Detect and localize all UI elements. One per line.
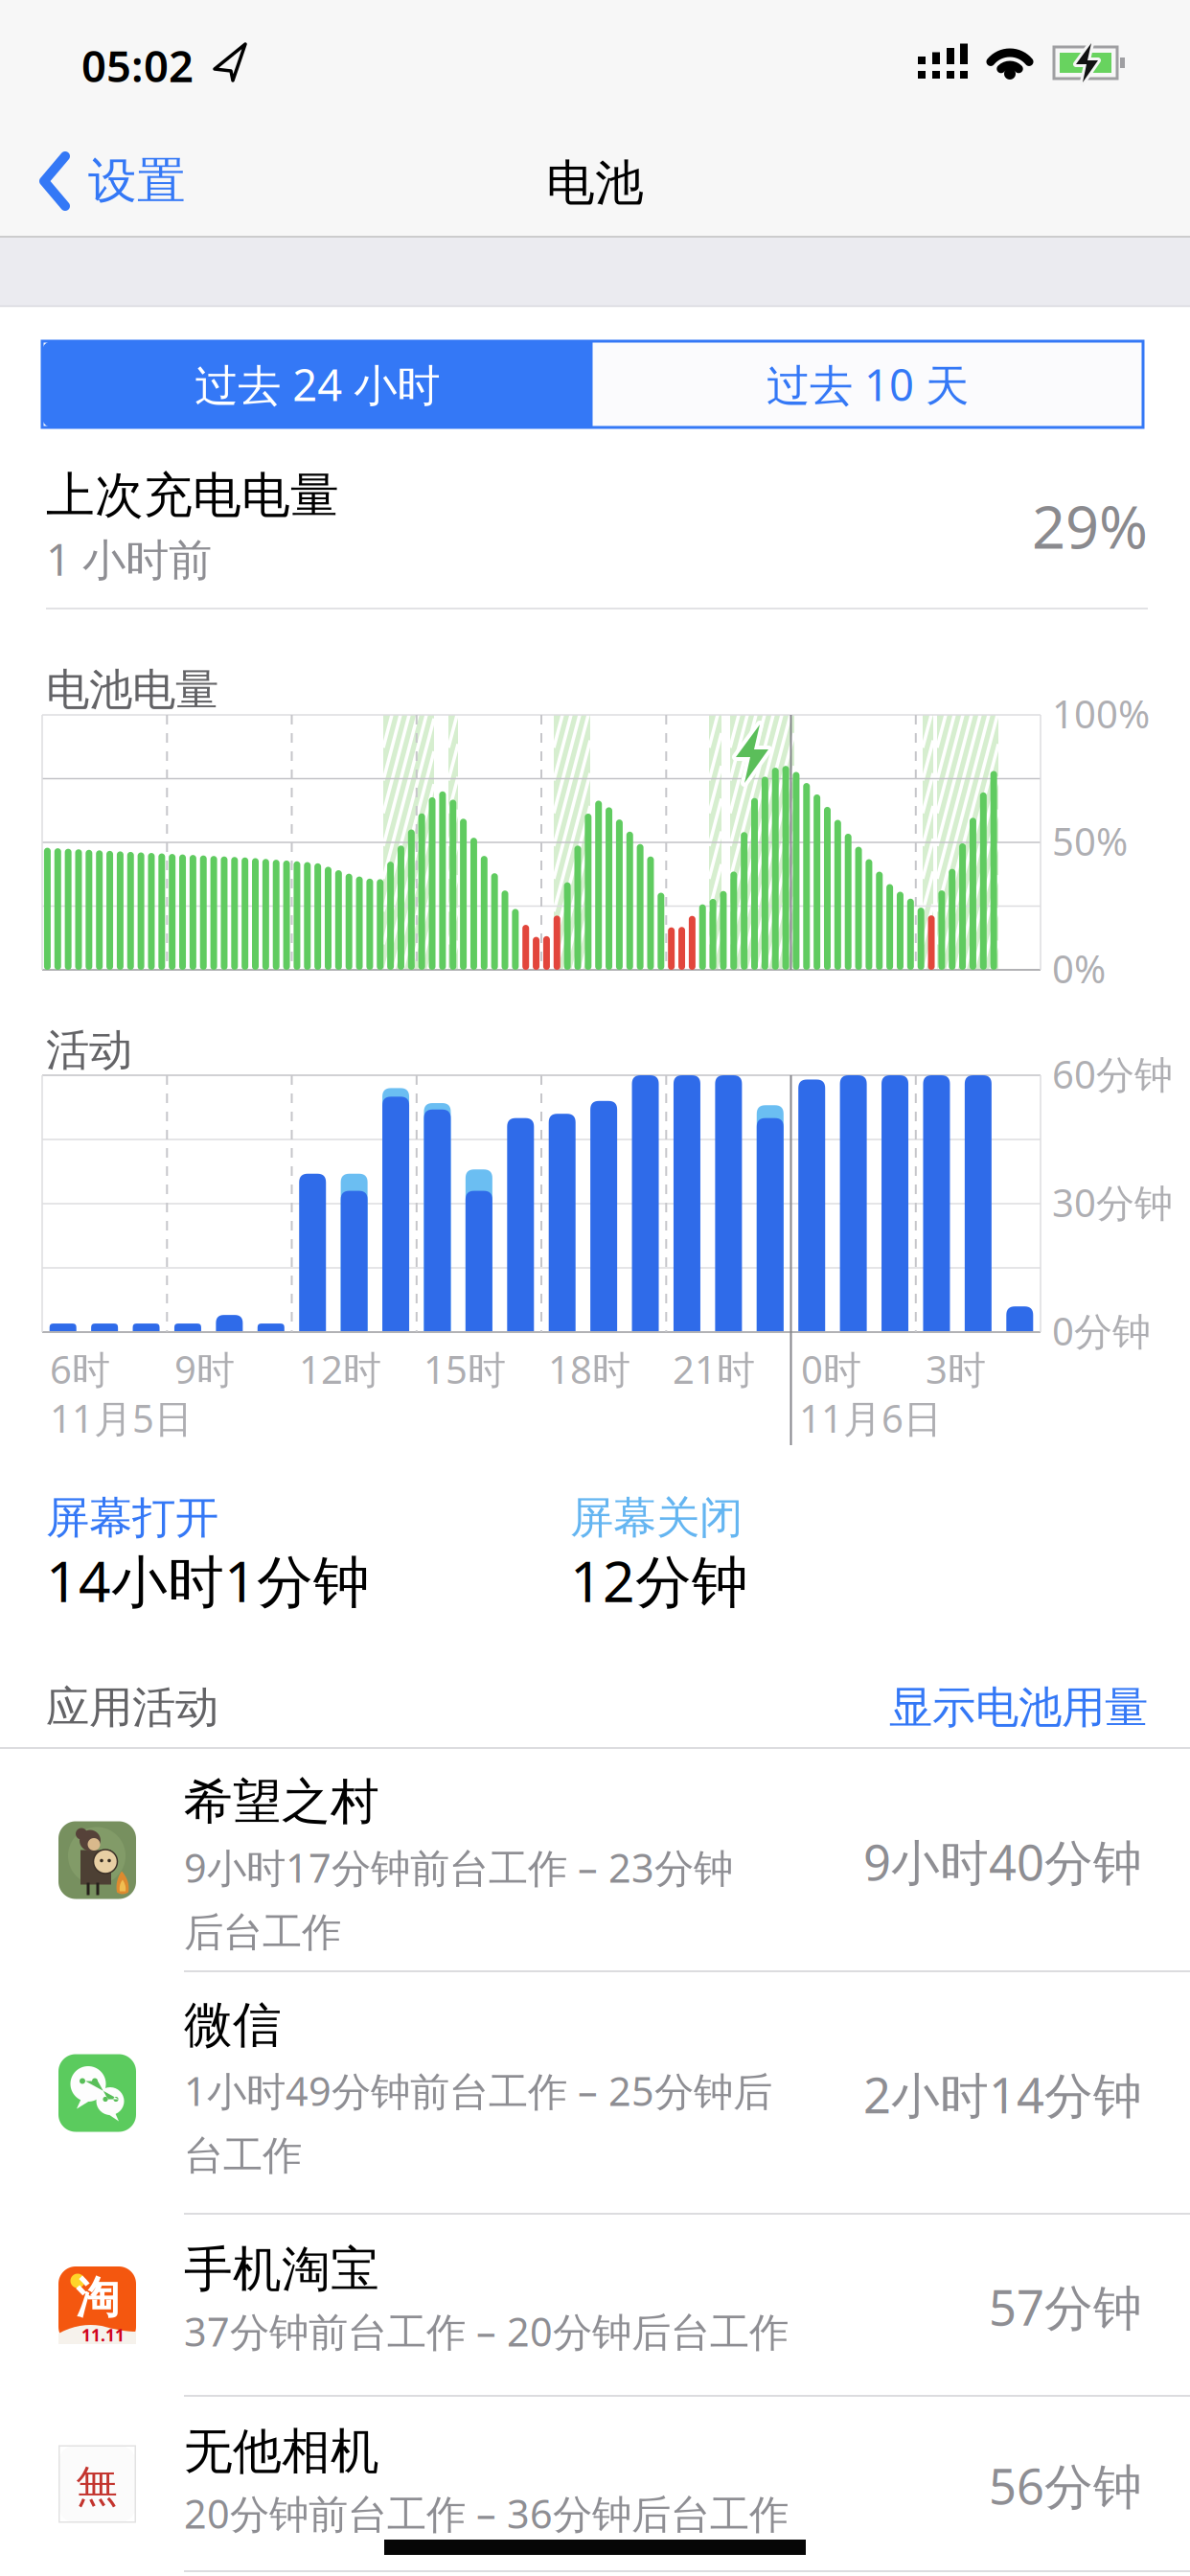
staticText: 显示电池用量 (889, 1681, 1148, 1734)
staticText: 0时 (801, 1344, 861, 1394)
staticText: 無 (76, 2461, 118, 2512)
staticText: 56分钟 (989, 2453, 1142, 2518)
staticText: 屏幕打开 (46, 1491, 218, 1545)
button[interactable]: 过去 24 小时 (42, 341, 593, 427)
staticText: 30分钟 (1052, 1177, 1173, 1228)
staticText: 05:02 (81, 36, 194, 94)
staticText: 37分钟前台工作 – 20分钟后台工作 (184, 2305, 789, 2357)
staticText: 电池电量 (46, 663, 218, 717)
staticText: 过去 24 小时 (195, 355, 440, 413)
staticText: 57分钟 (989, 2275, 1142, 2339)
staticText: 11月5日 (50, 1392, 193, 1443)
staticText: 上次充电电量 (46, 466, 339, 525)
staticText: 15时 (423, 1344, 506, 1394)
button[interactable]: 無 (0, 2397, 1190, 2571)
staticText: 微信 (184, 1995, 282, 2055)
staticText: 50% (1052, 816, 1128, 866)
staticText: 12分钟 (570, 1543, 748, 1618)
staticText: 2小时14分钟 (863, 2062, 1142, 2127)
staticText: 60分钟 (1052, 1048, 1173, 1099)
staticText: 后台工作 (184, 1908, 341, 1957)
button[interactable]: 过去 10 天 (593, 341, 1143, 427)
staticText: 淘 (76, 2271, 119, 2325)
staticText: 设置 (88, 151, 186, 211)
staticText: 应用活动 (46, 1681, 218, 1734)
button[interactable]: 希望之村 (0, 1749, 1190, 1971)
staticText: 18时 (548, 1344, 630, 1394)
staticText: 屏幕关闭 (570, 1491, 743, 1545)
staticText: 11.11 (81, 2324, 125, 2346)
staticText: 无他相机 (184, 2422, 379, 2481)
staticText: 9小时17分钟前台工作 – 23分钟 (184, 1841, 733, 1894)
staticText: 1 小时前 (46, 530, 212, 588)
button[interactable]: 微信 (0, 1972, 1190, 2214)
staticText: 20分钟前台工作 – 36分钟后台工作 (184, 2487, 789, 2539)
staticText: 29% (1032, 487, 1148, 565)
staticText: 活动 (46, 1023, 132, 1077)
staticText: 21时 (673, 1344, 755, 1394)
staticText: 6时 (50, 1344, 110, 1394)
staticText: 100% (1052, 688, 1150, 739)
staticText: 过去 10 天 (767, 355, 969, 413)
button[interactable]: 设置 (40, 150, 186, 212)
staticText: 台工作 (184, 2131, 302, 2180)
staticText: 14小时1分钟 (46, 1543, 370, 1618)
button[interactable]: 显示电池用量 (669, 1681, 1148, 1734)
staticText: 0分钟 (1052, 1305, 1151, 1356)
staticText: 1小时49分钟前台工作 – 25分钟后 (184, 2064, 772, 2117)
staticText: 12时 (299, 1344, 381, 1394)
staticText: 9小时40分钟 (863, 1829, 1142, 1894)
staticText: 11月6日 (799, 1392, 942, 1443)
staticText: 3时 (926, 1344, 986, 1394)
staticText: 手机淘宝 (184, 2240, 379, 2299)
staticText: 希望之村 (184, 1772, 379, 1832)
staticText: 0% (1052, 943, 1106, 994)
button[interactable]: 淘 (0, 2215, 1190, 2396)
staticText: 9时 (174, 1344, 235, 1394)
staticText: 电池 (546, 153, 644, 213)
